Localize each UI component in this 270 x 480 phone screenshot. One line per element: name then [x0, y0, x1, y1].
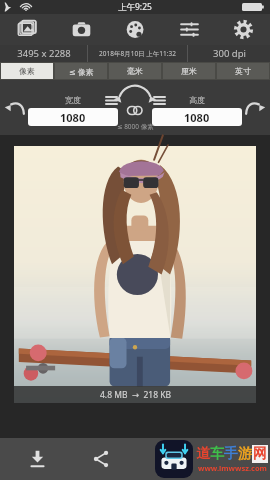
button[interactable]: Undo: [3, 94, 31, 122]
button[interactable]: Palette: [108, 14, 162, 45]
button[interactable]: 厘米: [163, 63, 215, 79]
button[interactable]: 英寸: [217, 63, 269, 79]
staticText: 英寸: [235, 66, 251, 76]
button[interactable]: 1080: [152, 108, 242, 126]
staticText: 像素: [19, 66, 35, 76]
staticText: 1080: [184, 110, 210, 125]
staticText: 毫米: [127, 66, 143, 76]
button[interactable]: Gallery: [0, 14, 54, 45]
button[interactable]: 1080: [28, 108, 118, 126]
staticText: 2018年8月10日 上午11:32: [99, 49, 176, 58]
button[interactable]: Camera: [54, 14, 108, 45]
staticText: 300 dpi: [213, 47, 246, 60]
button[interactable]: Menu: [152, 93, 166, 107]
button[interactable]: Adjust: [162, 14, 216, 45]
staticText: 3495 x 2288: [17, 47, 71, 60]
staticText: 高度: [189, 95, 205, 105]
staticText: 上午9:25: [118, 1, 152, 13]
staticText: 手: [224, 445, 238, 463]
staticText: 车: [210, 445, 224, 463]
staticText: 4.8 MB → 218 KB: [100, 389, 171, 401]
button[interactable]: Menu: [104, 93, 118, 107]
button[interactable]: 4.8 MB → 218 KB: [14, 146, 256, 403]
staticText: 网: [253, 445, 267, 463]
staticText: 道: [196, 445, 210, 463]
button[interactable]: 像素: [1, 63, 53, 79]
button[interactable]: Share: [86, 444, 116, 474]
button[interactable]: 毫米: [109, 63, 161, 79]
staticText: 1080: [60, 110, 86, 125]
staticText: 厘米: [181, 66, 197, 76]
staticText: 游: [238, 445, 252, 463]
button[interactable]: Settings: [216, 14, 270, 45]
button[interactable]: Save: [22, 444, 52, 474]
staticText: ≤ 像素: [69, 66, 94, 77]
staticText: ≤ 8000 像素: [117, 122, 154, 131]
staticText: www.lmwwsz.com: [198, 463, 267, 473]
staticText: 宽度: [65, 95, 81, 105]
button[interactable]: ≤ 像素: [55, 63, 107, 79]
button[interactable]: Redo: [239, 94, 267, 122]
